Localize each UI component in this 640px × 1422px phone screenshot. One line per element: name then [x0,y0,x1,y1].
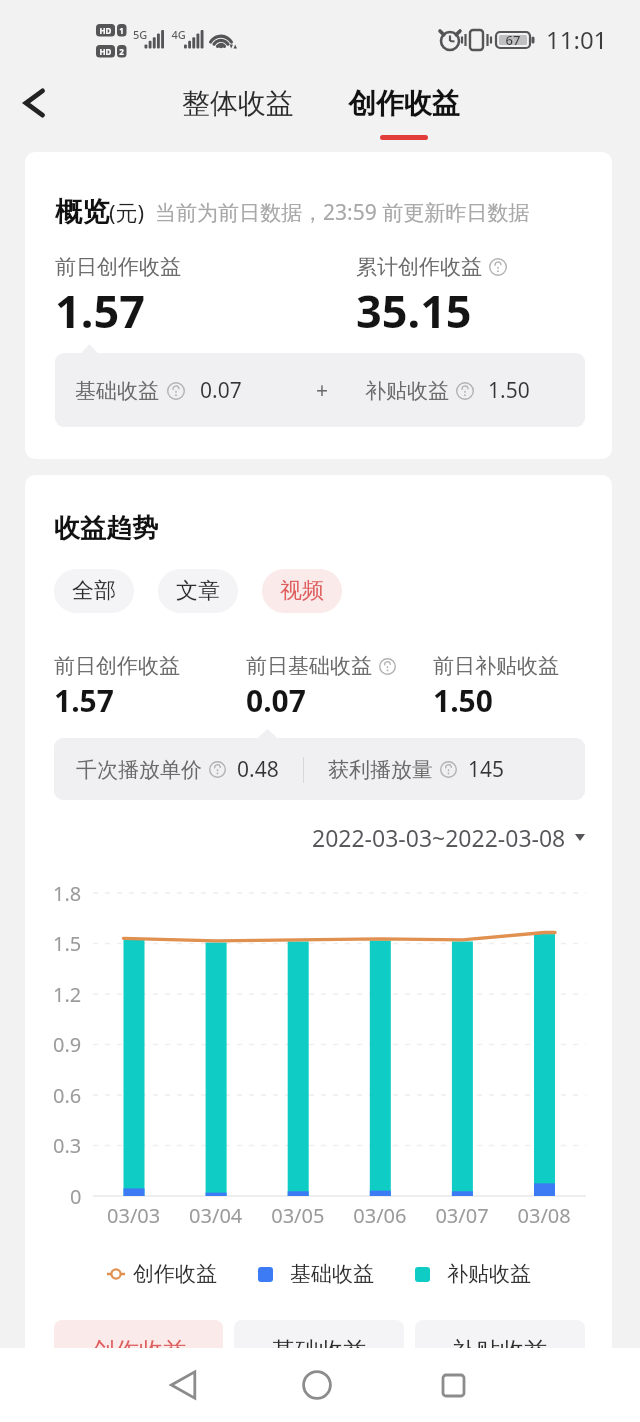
staticText: 补贴收益 [452,1336,548,1366]
staticText: 千次播放单价 [76,757,202,783]
button[interactable]: 基础收益 [234,1320,404,1382]
staticText: 前日创作收益 [54,653,180,679]
staticText: 0.48 [237,755,279,784]
staticText: 整体收益 [182,86,294,121]
staticText: 创作收益 [133,1261,217,1287]
staticText: 全部 [72,577,116,605]
staticText: 收益趋势 [54,512,158,545]
staticText: 获利播放量 [328,757,433,783]
staticText: (元) [109,197,145,227]
button[interactable]: 创作收益 [54,1320,223,1382]
staticText: 创作收益 [91,1336,187,1366]
staticText: 前日创作收益 [55,254,181,280]
staticText: 前日补贴收益 [433,653,559,679]
staticText: + [316,376,329,405]
staticText: 35.15 [356,280,472,341]
staticText: 前日基础收益 [246,653,372,679]
staticText: 当前为前日数据，23:59 前更新昨日数据 [155,198,530,227]
staticText: 基础收益 [75,378,159,404]
staticText: 补贴收益 [365,378,449,404]
staticText: 累计创作收益 [356,254,482,280]
button[interactable]: 2022-03-03~2022-03-08 [54,822,585,853]
staticText: 视频 [280,577,324,605]
staticText: 145 [468,755,505,784]
staticText: 2022-03-03~2022-03-08 [312,822,566,853]
button[interactable]: 文章 [158,569,238,613]
button[interactable]: Recent apps [419,1351,487,1419]
staticText: 1.50 [433,680,493,721]
button[interactable]: 整体收益 [178,80,298,127]
button[interactable]: 创作收益 [344,80,464,140]
staticText: 1.57 [54,680,114,721]
button[interactable]: 补贴收益 [415,1320,585,1382]
staticText: 1.57 [55,280,145,341]
staticText: 0.07 [246,680,306,721]
staticText: 补贴收益 [447,1261,531,1287]
button[interactable]: 视频 [262,569,342,613]
button[interactable]: Back [6,74,64,132]
staticText: 概览 [55,195,109,229]
staticText: 基础收益 [290,1261,374,1287]
button[interactable]: 全部 [54,569,134,613]
staticText: 基础收益 [271,1336,367,1366]
staticText: 1.50 [488,376,530,405]
staticText: 文章 [176,577,220,605]
button[interactable]: Home [283,1351,351,1419]
button[interactable]: Back [150,1351,218,1419]
staticText: 创作收益 [348,86,460,121]
staticText: 0.07 [200,376,242,405]
